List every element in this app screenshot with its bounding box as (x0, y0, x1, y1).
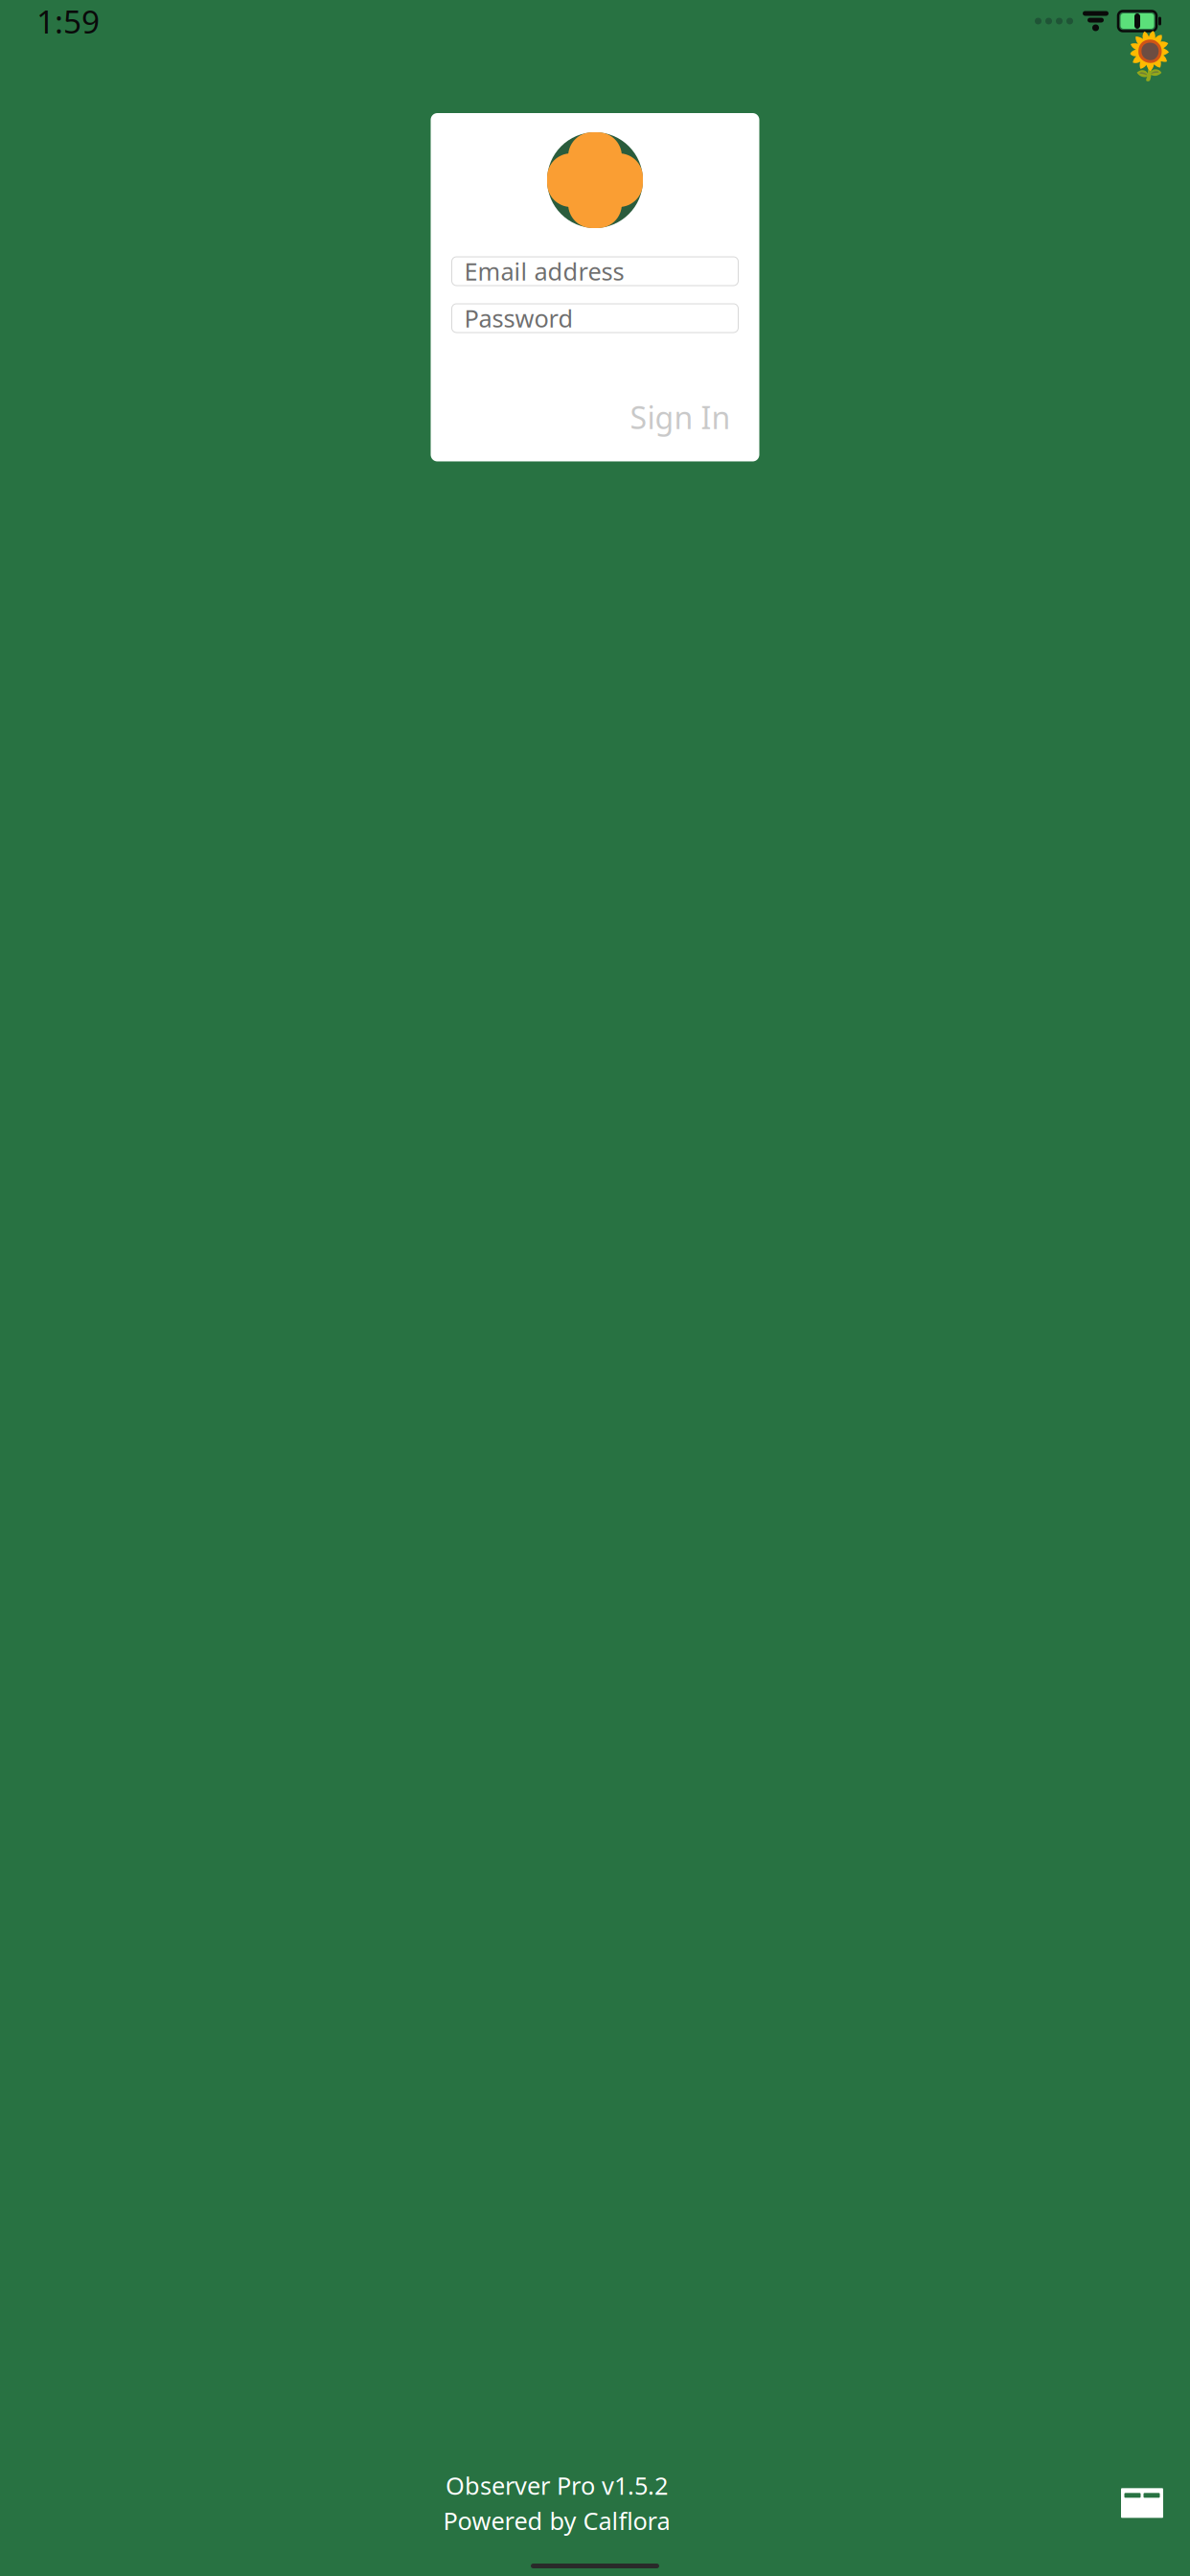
button[interactable]: Email address (452, 257, 738, 286)
button[interactable]: Password (452, 304, 738, 333)
staticText: Sign In (630, 397, 731, 437)
staticText: 🌻 (1121, 30, 1179, 83)
staticText: Powered by Calflora (443, 2505, 670, 2537)
staticText: Email address (464, 255, 624, 287)
staticText: Observer Pro v1.5.2 (446, 2469, 668, 2502)
staticText: Password (464, 302, 573, 334)
button[interactable]: Email support (1113, 2481, 1171, 2526)
staticText: 1:59 (36, 0, 100, 42)
button[interactable]: Sign In (622, 392, 738, 442)
